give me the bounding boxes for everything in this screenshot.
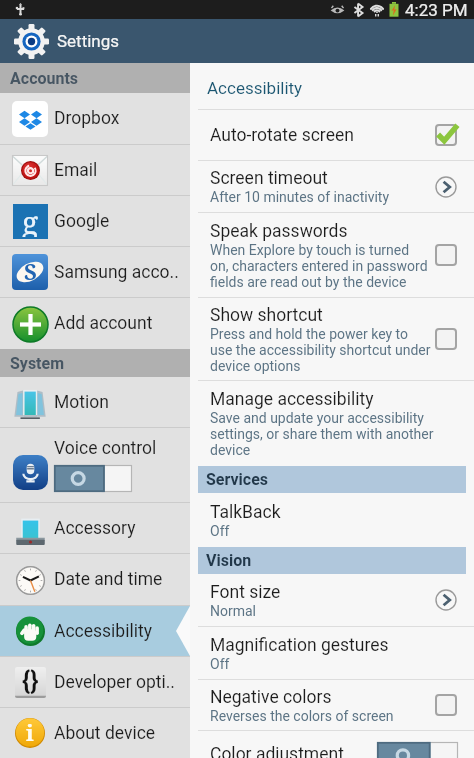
- staticText: Show shortcut: [210, 305, 323, 326]
- button[interactable]: Color adjustment toggle: [377, 742, 458, 758]
- staticText: Email: [54, 160, 98, 181]
- button[interactable]: Voice control: [0, 428, 190, 502]
- button[interactable]: Font size: [190, 574, 474, 626]
- staticText: Add account: [54, 313, 153, 334]
- staticText: Settings: [57, 31, 120, 51]
- button[interactable]: Magnification gestures: [190, 627, 474, 679]
- staticText: After 10 minutes of inactivity: [210, 189, 390, 205]
- staticText: Auto-rotate screen: [210, 125, 354, 146]
- staticText: Manage accessibility: [210, 389, 374, 410]
- button[interactable]: Accessibility: [0, 606, 190, 656]
- staticText: g: [22, 202, 39, 237]
- button[interactable]: Color adjustment: [190, 731, 474, 758]
- staticText: Press and hold the power key to use the …: [210, 326, 431, 374]
- staticText: Accessibility: [54, 621, 152, 642]
- button[interactable]: g: [0, 196, 190, 246]
- staticText: Samsung acco..: [54, 262, 179, 283]
- staticText: About device: [54, 723, 156, 744]
- button[interactable]: Accessory: [0, 503, 190, 553]
- staticText: Off: [210, 656, 230, 672]
- staticText: Accessibility: [207, 78, 303, 98]
- staticText: Date and time: [54, 569, 163, 590]
- staticText: Accessory: [54, 518, 136, 539]
- staticText: Color adjustment: [210, 744, 344, 758]
- button[interactable]: Show shortcut: [190, 298, 474, 380]
- button[interactable]: Unchecked checkbox: [435, 694, 457, 716]
- staticText: Screen timeout: [210, 168, 328, 189]
- button[interactable]: Auto-rotate screen: [190, 110, 474, 160]
- staticText: Motion: [54, 392, 109, 413]
- button[interactable]: S: [0, 247, 190, 297]
- staticText: Normal: [210, 603, 257, 619]
- button[interactable]: Negative colors: [190, 680, 474, 730]
- button[interactable]: {}: [0, 657, 190, 707]
- button[interactable]: Speak passwords: [190, 213, 474, 297]
- staticText: {}: [22, 667, 39, 696]
- staticText: Save and update your accessibility setti…: [210, 410, 434, 458]
- staticText: Magnification gestures: [210, 635, 389, 656]
- button[interactable]: Email: [0, 145, 190, 195]
- staticText: Developer opti..: [54, 672, 175, 693]
- button[interactable]: Motion: [0, 377, 190, 427]
- staticText: Negative colors: [210, 687, 332, 708]
- staticText: TalkBack: [210, 502, 281, 523]
- staticText: Voice control: [54, 438, 157, 459]
- button[interactable]: TalkBack: [190, 493, 474, 547]
- staticText: i: [26, 717, 34, 747]
- button[interactable]: Checked checkbox: [435, 124, 457, 146]
- staticText: Vision: [206, 551, 252, 570]
- button[interactable]: Unchecked checkbox: [435, 244, 457, 266]
- staticText: Services: [206, 470, 269, 489]
- button[interactable]: Voice control toggle: [54, 465, 132, 492]
- button[interactable]: Settings: [0, 19, 474, 63]
- button[interactable]: Add account: [0, 298, 190, 349]
- button[interactable]: Unchecked checkbox: [435, 328, 457, 350]
- button[interactable]: Open setting: [435, 589, 457, 611]
- staticText: Reverses the colors of screen: [210, 708, 394, 724]
- staticText: Accounts: [10, 69, 79, 88]
- staticText: System: [10, 354, 65, 373]
- button[interactable]: Date and time: [0, 554, 190, 605]
- button[interactable]: i: [0, 708, 190, 758]
- button[interactable]: Dropbox: [0, 93, 190, 144]
- button[interactable]: Open setting: [435, 176, 457, 198]
- staticText: S: [24, 256, 37, 286]
- button[interactable]: Screen timeout: [190, 161, 474, 212]
- staticText: When Explore by touch is turned on, char…: [210, 242, 428, 290]
- staticText: Font size: [210, 582, 281, 603]
- staticText: Off: [210, 523, 230, 539]
- staticText: Google: [54, 211, 110, 232]
- staticText: Speak passwords: [210, 221, 348, 242]
- staticText: Dropbox: [54, 108, 120, 129]
- staticText: 4:23 PM: [405, 0, 468, 19]
- button[interactable]: Manage accessibility: [190, 381, 474, 466]
